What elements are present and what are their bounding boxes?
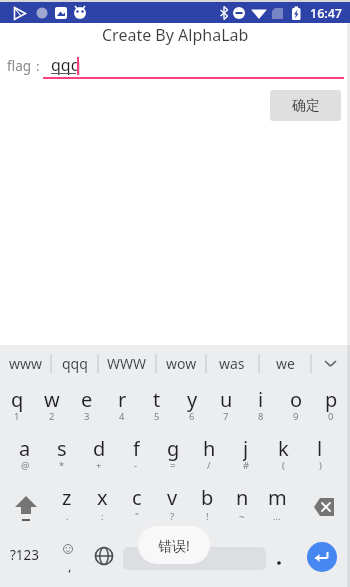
staticText: y	[187, 386, 198, 412]
staticText: qqq	[51, 54, 81, 76]
button[interactable]	[307, 542, 337, 572]
button[interactable]: www	[2, 350, 50, 376]
button[interactable]: s	[45, 435, 79, 461]
staticText: 2	[49, 410, 55, 422]
staticText: .	[66, 510, 69, 522]
staticText: s	[57, 435, 67, 461]
staticText: l	[317, 435, 323, 461]
button[interactable]: o	[279, 386, 313, 412]
staticText: qqq	[62, 354, 88, 373]
staticText: d	[93, 435, 106, 461]
button[interactable]: r	[105, 386, 139, 412]
staticText: q	[11, 386, 24, 412]
button[interactable]: a	[8, 435, 42, 461]
button[interactable]: was	[208, 350, 256, 376]
staticText: o	[290, 386, 303, 412]
button[interactable]: qqq	[51, 350, 99, 376]
staticText: 错误!	[158, 536, 190, 555]
staticText: *	[59, 459, 65, 471]
button[interactable]: n	[225, 484, 259, 510]
button[interactable]: q	[0, 386, 34, 412]
button[interactable]: v	[155, 484, 189, 510]
staticText: a	[19, 435, 31, 461]
staticText: c	[132, 484, 142, 510]
button[interactable]: ,	[60, 553, 80, 579]
staticText: z	[62, 484, 72, 510]
staticText: g	[167, 435, 180, 461]
staticText: -	[134, 459, 138, 471]
button[interactable]: i	[244, 386, 278, 412]
staticText: +	[96, 459, 102, 471]
staticText: ~	[239, 510, 245, 522]
staticText: 8	[258, 410, 264, 422]
staticText: 3	[84, 410, 90, 422]
staticText: x	[97, 484, 108, 510]
button[interactable]	[305, 495, 343, 521]
button[interactable]	[8, 490, 44, 524]
button[interactable]: 确定	[270, 90, 341, 121]
button[interactable]	[90, 542, 118, 570]
staticText: "	[135, 510, 139, 522]
button[interactable]: p	[314, 386, 348, 412]
staticText: 6	[189, 410, 195, 422]
staticText: ?123	[10, 546, 40, 564]
staticText: :	[101, 510, 104, 522]
button[interactable]: m	[260, 484, 294, 510]
button[interactable]: h	[192, 435, 226, 461]
staticText: n	[236, 484, 249, 510]
button[interactable]: z	[50, 484, 84, 510]
staticText: )	[319, 459, 322, 471]
button[interactable]: j	[229, 435, 263, 461]
staticText: 4	[119, 410, 125, 422]
button[interactable]: k	[266, 435, 300, 461]
staticText: flag：	[7, 57, 45, 75]
button[interactable]: b	[190, 484, 224, 510]
button[interactable]: WWW	[103, 350, 151, 376]
staticText: ?	[170, 510, 175, 522]
button[interactable]: y	[175, 386, 209, 412]
button[interactable]	[123, 547, 266, 570]
staticText: f	[133, 435, 140, 461]
staticText: 9	[293, 410, 299, 422]
staticText: h	[203, 435, 216, 461]
staticText: 0	[328, 410, 334, 422]
button[interactable]: u	[209, 386, 243, 412]
staticText: v	[167, 484, 178, 510]
staticText: we	[276, 354, 295, 373]
staticText: ,	[68, 557, 72, 575]
staticText: 16:47	[310, 5, 343, 22]
staticText: /	[207, 459, 211, 471]
staticText: =	[170, 459, 176, 471]
button[interactable]	[267, 545, 291, 569]
staticText: www	[9, 354, 43, 373]
button[interactable]: wow	[157, 350, 205, 376]
staticText: 7	[223, 410, 229, 422]
button[interactable]: we	[261, 350, 309, 376]
staticText: (	[282, 459, 285, 471]
button[interactable]: t	[140, 386, 174, 412]
staticText: 确定	[292, 97, 320, 115]
staticText: u	[220, 386, 233, 412]
button[interactable]: ?123	[3, 542, 47, 568]
staticText: 5	[154, 410, 160, 422]
staticText: Create By AlphaLab	[102, 24, 249, 46]
staticText: k	[278, 435, 289, 461]
staticText: @	[21, 459, 30, 471]
staticText: m	[268, 484, 287, 510]
staticText: was	[219, 354, 245, 373]
staticText: i	[258, 386, 264, 412]
button[interactable]: f	[119, 435, 153, 461]
button[interactable]: x	[85, 484, 119, 510]
button[interactable]: d	[82, 435, 116, 461]
staticText: j	[243, 435, 249, 461]
staticText: b	[201, 484, 214, 510]
staticText: wow	[166, 354, 197, 373]
staticText: e	[81, 386, 93, 412]
button[interactable]: e	[70, 386, 104, 412]
button[interactable]: w	[35, 386, 69, 412]
button[interactable]: c	[120, 484, 154, 510]
button[interactable]: l	[303, 435, 337, 461]
staticText: #	[243, 459, 250, 471]
button[interactable]: g	[156, 435, 190, 461]
